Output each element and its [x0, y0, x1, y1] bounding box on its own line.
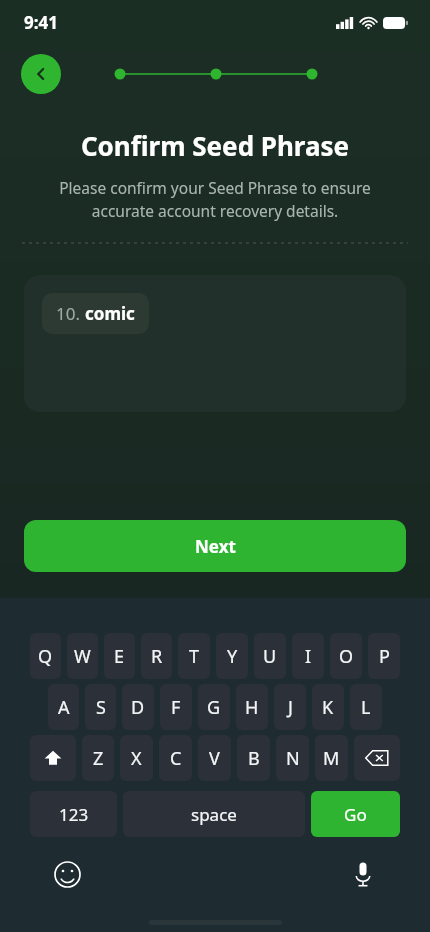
button[interactable]: P [368, 633, 400, 679]
button[interactable]: Back [21, 54, 61, 94]
button[interactable]: C [159, 735, 192, 781]
button[interactable]: Next [24, 520, 406, 572]
staticText: Y [227, 644, 238, 669]
staticText: A [58, 695, 70, 720]
button[interactable]: Backspace [354, 735, 400, 781]
staticText: H [245, 695, 259, 720]
button[interactable]: I [292, 633, 324, 679]
button[interactable]: 123 [30, 791, 117, 837]
staticText: J [288, 695, 293, 720]
staticText: I [305, 644, 312, 669]
staticText: X [131, 746, 142, 771]
button[interactable]: F [160, 684, 192, 730]
staticText: Confirm Seed Phrase [30, 128, 400, 163]
staticText: Please confirm your Seed Phrase to ensur… [30, 177, 400, 222]
staticText: O [339, 644, 354, 669]
button[interactable]: space [123, 791, 305, 837]
button[interactable]: W [67, 633, 98, 679]
button[interactable]: V [198, 735, 231, 781]
staticText: Go [344, 803, 367, 826]
staticText: G [207, 695, 221, 720]
button[interactable]: H [236, 684, 268, 730]
staticText: L [361, 695, 371, 720]
staticText: N [286, 746, 300, 771]
button[interactable]: B [237, 735, 270, 781]
staticText: comic [85, 302, 135, 325]
button[interactable]: 10. [42, 293, 149, 334]
button[interactable]: R [141, 633, 172, 679]
staticText: D [131, 695, 145, 720]
staticText: 10. [56, 302, 85, 325]
button[interactable]: A [48, 684, 79, 730]
staticText: V [209, 746, 220, 771]
staticText: B [248, 746, 260, 771]
staticText: W [74, 644, 91, 669]
staticText: E [114, 644, 125, 669]
staticText: K [322, 695, 334, 720]
staticText: T [189, 644, 200, 669]
button[interactable]: Voice input [346, 857, 380, 891]
button[interactable]: Emoji [50, 857, 84, 891]
button[interactable]: E [104, 633, 135, 679]
staticText: space [191, 803, 237, 826]
button[interactable]: Go [311, 791, 400, 837]
staticText: S [96, 695, 106, 720]
button[interactable]: T [178, 633, 210, 679]
staticText: C [170, 746, 182, 771]
button[interactable]: L [350, 684, 382, 730]
staticText: U [263, 644, 277, 669]
button[interactable]: D [122, 684, 154, 730]
button[interactable]: J [274, 684, 306, 730]
button[interactable]: Shift [30, 735, 76, 781]
staticText: Next [195, 535, 236, 558]
button[interactable]: Q [30, 633, 61, 679]
button[interactable]: O [330, 633, 362, 679]
button[interactable]: X [120, 735, 153, 781]
button[interactable]: Z [82, 735, 114, 781]
staticText: M [323, 746, 340, 771]
staticText: R [151, 644, 163, 669]
button[interactable]: U [254, 633, 286, 679]
staticText: 123 [59, 803, 89, 826]
staticText: 9:41 [24, 11, 58, 34]
button[interactable]: Y [216, 633, 248, 679]
staticText: F [171, 695, 181, 720]
staticText: Q [38, 644, 53, 669]
staticText: P [379, 644, 390, 669]
staticText: Z [93, 746, 104, 771]
button[interactable]: S [85, 684, 116, 730]
button[interactable]: N [276, 735, 309, 781]
button[interactable]: M [315, 735, 348, 781]
button[interactable]: G [198, 684, 230, 730]
button[interactable]: K [312, 684, 344, 730]
